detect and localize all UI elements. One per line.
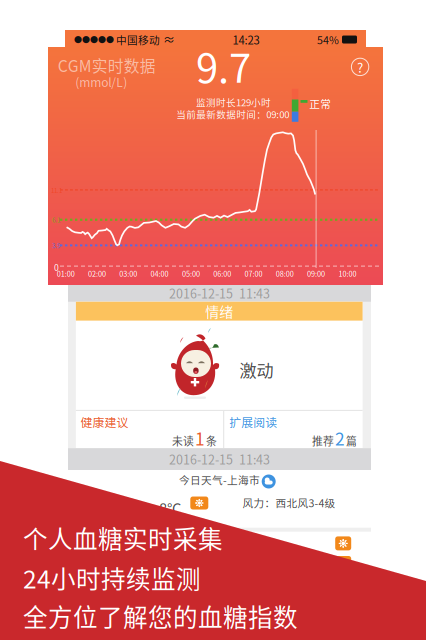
staticText: CGM实时数据	[58, 54, 156, 76]
staticText: 01:00	[57, 268, 75, 279]
staticText: 情绪	[205, 301, 233, 321]
staticText: 24小时持续监测	[23, 560, 201, 595]
button[interactable]: 扩展阅读	[224, 411, 363, 448]
staticText: 今日天气-上海市	[179, 472, 260, 487]
staticText: 2016-12-15 11:43	[169, 450, 270, 468]
staticText: 激动	[240, 357, 274, 382]
staticText: 11.1	[51, 186, 62, 195]
staticText: 1	[195, 425, 205, 450]
staticText: 全方位了解您的血糖指数	[23, 598, 298, 634]
staticText: 9.7	[196, 36, 251, 94]
staticText: 扩展阅读	[229, 413, 277, 430]
button[interactable]: Help	[347, 54, 373, 80]
staticText: 篇	[346, 433, 357, 448]
staticText: 2016-12-15 11:43	[169, 284, 270, 302]
staticText: (mmol/L)	[75, 73, 127, 91]
staticText: 2	[335, 425, 345, 450]
staticText: 当前最新数据时间：09:00	[176, 107, 289, 121]
staticText: 个人血糖实时采集	[23, 520, 223, 555]
staticText: 风力：西北风3-4级	[242, 495, 335, 510]
staticText: 08:00	[276, 268, 294, 279]
staticText: 正常	[309, 96, 331, 111]
staticText: 未读	[172, 433, 194, 448]
staticText: ●●●●●	[74, 34, 114, 45]
staticText: 6.1	[52, 215, 60, 224]
staticText: 54%	[317, 32, 339, 47]
staticText: 3.9	[52, 241, 60, 250]
staticText: 09:00	[307, 268, 325, 279]
staticText: 07:00	[244, 268, 262, 279]
staticText: 03:00	[119, 268, 137, 279]
staticText: ?	[357, 57, 363, 76]
staticText: 05:00	[182, 268, 200, 279]
button[interactable]: 健康建议	[76, 411, 223, 448]
staticText: 8°C	[159, 497, 181, 518]
staticText: 10:00	[338, 268, 356, 279]
staticText: 04:00	[151, 268, 169, 279]
staticText: 06:00	[213, 268, 231, 279]
staticText: 推荐	[312, 433, 334, 448]
staticText: 中国移动	[114, 32, 160, 47]
staticText: 14:23	[232, 31, 259, 48]
staticText: 监测时长129小时	[196, 95, 271, 109]
staticText: 02:00	[88, 268, 106, 279]
staticText: 健康建议	[80, 413, 128, 430]
staticText: ≈	[160, 31, 175, 48]
staticText: 0	[54, 261, 59, 273]
staticText: 条	[206, 433, 217, 448]
